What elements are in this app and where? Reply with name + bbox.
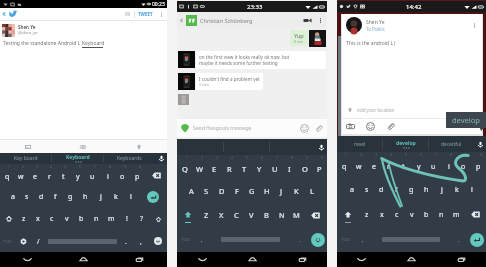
button[interactable]: 2 <box>351 152 366 177</box>
button[interactable]: Add photo <box>0 140 55 153</box>
button[interactable]: K <box>289 179 304 203</box>
button[interactable]: Attach <box>313 123 324 134</box>
button[interactable]: Voice input <box>474 136 486 152</box>
button[interactable]: 5 <box>396 152 411 177</box>
button[interactable] <box>371 227 451 252</box>
button[interactable]: Back <box>1 11 7 17</box>
button[interactable]: k <box>449 177 464 202</box>
button[interactable]: deceitful <box>429 136 474 152</box>
button[interactable]: 6 <box>252 155 267 179</box>
button[interactable]: 0 <box>471 152 486 177</box>
button[interactable]: 7 <box>426 152 441 177</box>
button[interactable]: 5 <box>237 155 252 179</box>
button[interactable]: Home <box>55 252 111 267</box>
button[interactable]: ?123 <box>0 230 15 252</box>
button[interactable]: z <box>359 202 374 227</box>
button[interactable]: 6 <box>70 164 85 186</box>
button[interactable]: l <box>123 186 138 208</box>
button[interactable]: g <box>404 177 419 202</box>
button[interactable]: Z <box>199 203 214 227</box>
button[interactable]: C <box>229 203 244 227</box>
button[interactable]: 4 <box>222 155 237 179</box>
button[interactable]: 9 <box>115 164 130 186</box>
button[interactable]: b <box>419 202 434 227</box>
button[interactable]: h <box>78 186 93 208</box>
button[interactable]: 4 <box>42 164 56 186</box>
button[interactable]: Emoji <box>148 230 167 252</box>
button[interactable]: v <box>59 208 74 230</box>
button[interactable]: Enter <box>138 186 167 208</box>
button[interactable]: c <box>389 202 404 227</box>
button[interactable]: b <box>74 208 89 230</box>
button[interactable]: 6 <box>411 152 426 177</box>
button[interactable]: h <box>419 177 434 202</box>
button[interactable]: Recent apps <box>277 252 327 267</box>
button[interactable]: J <box>274 179 289 203</box>
button[interactable]: 9 <box>297 155 312 179</box>
button[interactable]: 0 <box>130 164 145 186</box>
button[interactable]: n <box>434 202 449 227</box>
button[interactable]: Mood <box>365 121 376 132</box>
button[interactable]: a <box>6 186 20 208</box>
button[interactable]: , <box>133 230 148 252</box>
button[interactable]: 2 <box>192 155 207 179</box>
button[interactable]: 8 <box>282 155 297 179</box>
button[interactable]: Enter <box>467 227 486 252</box>
button[interactable]: n <box>89 208 104 230</box>
button[interactable]: develop <box>383 136 428 152</box>
button[interactable]: a <box>344 177 359 202</box>
button[interactable]: Keyboard <box>52 153 103 164</box>
button[interactable]: . <box>118 230 133 252</box>
button[interactable]: N <box>274 203 289 227</box>
button[interactable]: 3 <box>366 152 381 177</box>
button[interactable]: d <box>374 177 389 202</box>
button[interactable]: 1 <box>177 155 192 179</box>
button[interactable]: l <box>464 177 479 202</box>
button[interactable]: Backspace <box>304 203 327 227</box>
button[interactable] <box>46 230 118 252</box>
button[interactable]: m <box>449 202 464 227</box>
button[interactable]: Voice input <box>155 153 167 164</box>
button[interactable]: 8 <box>100 164 115 186</box>
button[interactable]: Attach <box>385 121 396 132</box>
button[interactable]: Emoji <box>299 123 310 134</box>
button[interactable]: ?123 <box>337 227 354 252</box>
button[interactable]: 7 <box>267 155 282 179</box>
button[interactable]: / <box>31 230 46 252</box>
button[interactable]: 9 <box>456 152 471 177</box>
button[interactable]: 8 <box>441 152 456 177</box>
button[interactable]: Settings <box>15 230 31 252</box>
button[interactable]: f <box>48 186 63 208</box>
button[interactable]: Backspace <box>145 164 167 186</box>
button[interactable]: X <box>214 203 229 227</box>
button[interactable]: 4 <box>381 152 396 177</box>
button[interactable]: , <box>193 227 210 252</box>
button[interactable]: A <box>184 179 199 203</box>
button[interactable]: s <box>20 186 34 208</box>
button[interactable]: j <box>434 177 449 202</box>
button[interactable]: F <box>229 179 244 203</box>
button[interactable]: Recent apps <box>111 252 167 267</box>
button[interactable]: 0 <box>312 155 327 179</box>
button[interactable]: S <box>199 179 214 203</box>
button[interactable] <box>210 227 291 252</box>
button[interactable]: x <box>374 202 389 227</box>
button[interactable]: g <box>63 186 78 208</box>
button[interactable]: , <box>354 227 371 252</box>
button[interactable]: V <box>244 203 259 227</box>
button[interactable]: H <box>259 179 274 203</box>
button[interactable]: ?123 <box>177 227 193 252</box>
button[interactable]: Home <box>227 252 277 267</box>
button[interactable]: Back <box>337 252 386 267</box>
button[interactable]: L <box>304 179 319 203</box>
button[interactable]: Camera <box>55 140 111 153</box>
button[interactable]: 7 <box>85 164 100 186</box>
button[interactable]: Recent apps <box>436 252 486 267</box>
button[interactable]: More options <box>316 16 325 25</box>
button[interactable]: m <box>104 208 119 230</box>
button[interactable]: Video call <box>302 15 312 25</box>
button[interactable]: ? <box>134 208 149 230</box>
button[interactable]: 3 <box>207 155 222 179</box>
